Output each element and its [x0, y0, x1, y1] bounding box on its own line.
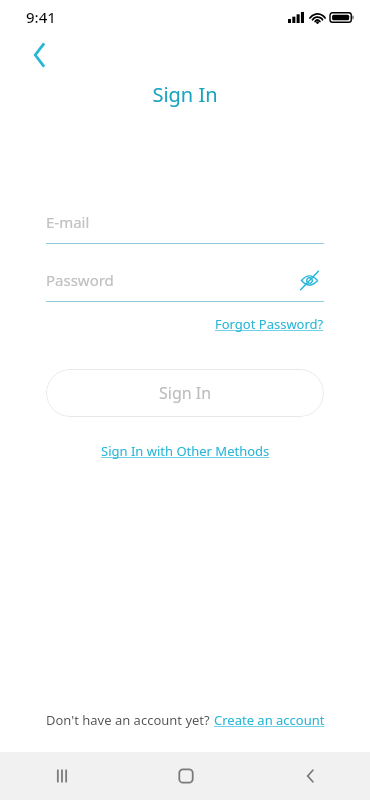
staticText: Sign In: [152, 81, 218, 108]
button[interactable]: Create an account: [214, 711, 325, 729]
staticText: Password: [46, 270, 114, 290]
staticText: Forgot Password?: [215, 315, 324, 333]
button[interactable]: Home: [124, 752, 247, 800]
staticText: Sign In with Other Methods: [101, 442, 270, 460]
button[interactable]: Back: [22, 38, 56, 72]
button[interactable]: Show password: [294, 265, 324, 295]
staticText: Sign In: [159, 382, 212, 404]
button[interactable]: Back: [247, 752, 370, 800]
button[interactable]: Forgot Password?: [213, 312, 326, 336]
button[interactable]: Sign In: [46, 369, 324, 417]
button[interactable]: Recent apps: [0, 752, 124, 800]
staticText: 9:41: [26, 7, 56, 27]
button[interactable]: Sign In with Other Methods: [97, 439, 274, 463]
staticText: E-mail: [46, 212, 90, 232]
staticText: Create an account: [214, 711, 325, 729]
staticText: Don't have an account yet?: [46, 711, 214, 729]
